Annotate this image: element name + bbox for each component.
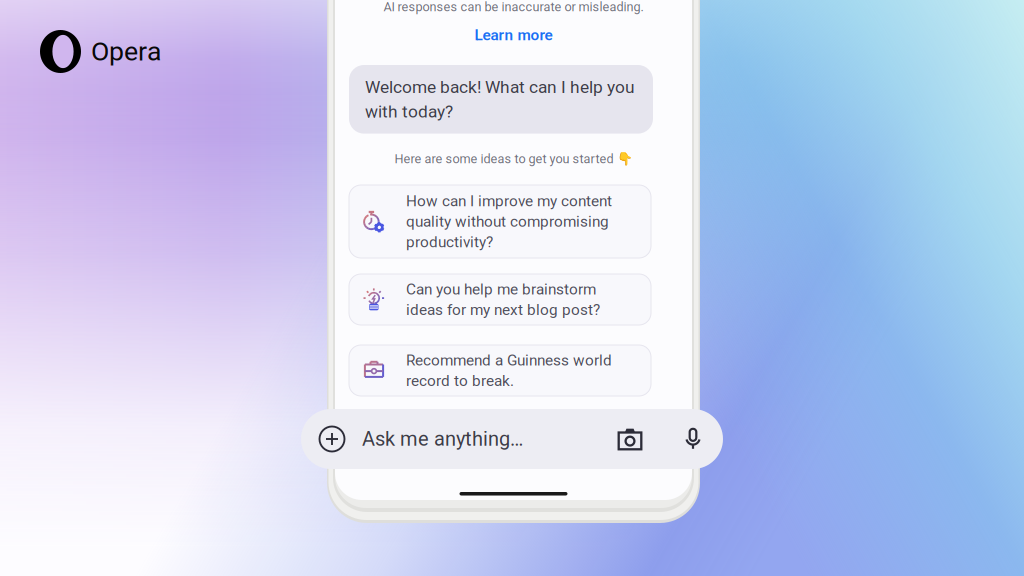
staticText: How can I improve my content quality wit… [406,192,612,251]
button[interactable]: How can I improve my content quality wit… [349,185,651,258]
button[interactable]: Ask me anything… [362,409,592,469]
button[interactable]: Voice input [673,409,713,469]
staticText: Recommend a Guinness world record to bre… [406,351,612,390]
button[interactable]: Recommend a Guinness world record to bre… [349,345,651,396]
button[interactable]: Learn more [335,25,692,45]
button[interactable]: Can you help me brainstorm ideas for my … [349,274,651,325]
staticText: Ask me anything… [362,427,523,451]
staticText: Can you help me brainstorm ideas for my … [406,280,600,319]
staticText: Welcome back! What can I help you with t… [365,77,635,122]
button[interactable]: Add attachment [310,409,354,469]
staticText: Here are some ideas to get you started 👇 [394,152,632,166]
staticText: Learn more [474,26,552,44]
staticText: AI responses can be inaccurate or mislea… [383,0,643,14]
staticText: Opera [91,36,162,67]
button[interactable]: Camera [608,409,652,469]
